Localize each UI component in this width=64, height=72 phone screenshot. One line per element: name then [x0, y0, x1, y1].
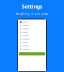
staticText: Settings [21, 3, 42, 10]
button[interactable] [19, 44, 45, 48]
button[interactable] [19, 48, 45, 51]
button[interactable] [19, 41, 45, 44]
button[interactable] [19, 24, 45, 27]
button[interactable] [19, 52, 45, 55]
button[interactable] [19, 27, 45, 31]
button[interactable] [19, 37, 45, 41]
button[interactable] [19, 31, 45, 34]
staticText: Everything in one place [15, 12, 48, 16]
button[interactable] [19, 20, 45, 24]
button[interactable] [19, 34, 45, 37]
